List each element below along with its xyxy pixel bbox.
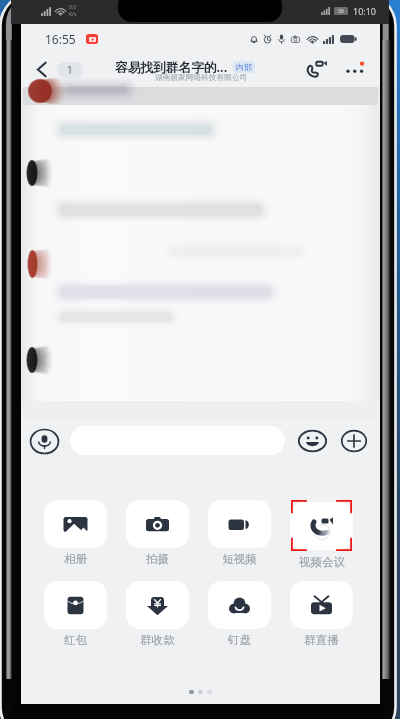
staticText: 50 [338,8,344,15]
button[interactable]: 短视频 [208,500,271,566]
button[interactable]: 红包 [44,581,107,647]
button[interactable]: 视频会议 [290,500,353,569]
button[interactable]: Voice message [30,429,59,454]
staticText: 10:10 [353,5,377,17]
staticText: 内部 [236,62,252,72]
staticText: 1 [67,63,73,77]
staticText: K/s [69,11,77,18]
staticText: 钉盘 [228,633,251,647]
button[interactable]: 拍摄 [126,500,189,566]
button[interactable]: Back [35,61,83,78]
staticText: 短视频 [222,552,257,566]
staticText: 16:55 [45,31,76,47]
button[interactable]: 相册 [44,500,107,566]
staticText: 群直播 [304,633,339,647]
button[interactable]: 群直播 [290,581,353,647]
button[interactable]: 群收款 [126,581,189,647]
staticText: 湖南丽家网络科技有限公司 [155,73,248,83]
button[interactable]: 钉盘 [208,581,271,647]
staticText: 视频会议 [299,555,345,569]
staticText: 拍摄 [146,552,169,566]
staticText: 相册 [64,552,87,566]
button[interactable]: Video call [303,58,329,80]
staticText: 红包 [64,633,87,647]
staticText: 0.0 [69,4,77,11]
staticText: 群收款 [140,633,175,647]
button[interactable]: More options [343,58,367,80]
button[interactable]: More actions [341,430,367,452]
staticText: 容易找到群名字的... [115,58,228,75]
other: Back [35,61,48,78]
button[interactable]: Emoji [298,430,327,452]
